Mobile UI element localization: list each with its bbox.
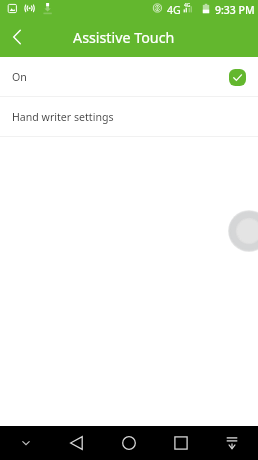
button[interactable]: Hand writer settings	[0, 97, 258, 137]
button[interactable]: Enabled	[229, 69, 246, 86]
button[interactable]: Hide keyboard	[4, 426, 48, 460]
button[interactable]: Back	[0, 17, 37, 57]
button[interactable]: Home	[107, 426, 151, 460]
staticText: 4G	[184, 2, 191, 9]
staticText: On	[12, 70, 27, 84]
button[interactable]: On	[0, 57, 258, 97]
staticText: 4G	[167, 3, 181, 17]
staticText: Hand writer settings	[12, 110, 114, 124]
staticText: 9:33 PM	[215, 3, 255, 17]
button[interactable]: Collapse navigation bar	[210, 426, 254, 460]
button[interactable]: Back	[55, 426, 99, 460]
staticText: Assistive Touch	[73, 28, 175, 47]
button[interactable]: Recent apps	[159, 426, 203, 460]
